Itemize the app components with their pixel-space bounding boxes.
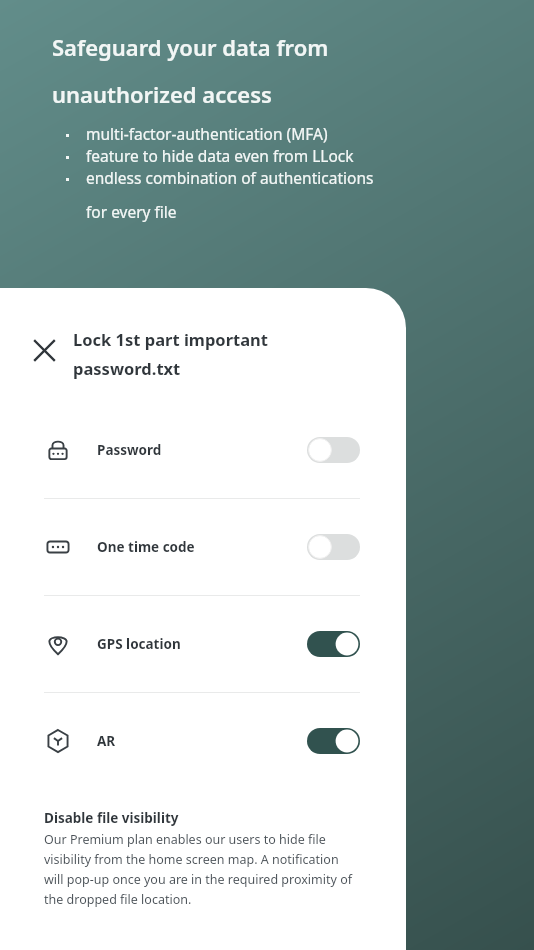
button[interactable]: Close xyxy=(24,330,64,370)
staticText: multi-factor-authentication (MFA) xyxy=(86,123,328,144)
staticText: One time code xyxy=(97,538,195,556)
staticText: endless combination of authentications f… xyxy=(86,167,374,223)
staticText: Our Premium plan enables our users to hi… xyxy=(44,831,360,908)
staticText: AR xyxy=(97,732,116,750)
button[interactable]: GPS location xyxy=(0,596,406,692)
staticText: Lock 1st part important password.txt xyxy=(73,328,268,380)
staticText: Disable file visibility xyxy=(44,809,179,827)
staticText: GPS location xyxy=(97,635,181,653)
staticText: Password xyxy=(97,441,162,459)
button[interactable]: One time code xyxy=(0,499,406,595)
button[interactable]: Password xyxy=(0,402,406,498)
staticText: Safeguard your data from unauthorized ac… xyxy=(52,32,329,109)
staticText: feature to hide data even from LLock xyxy=(86,145,354,166)
button[interactable]: AR xyxy=(0,693,406,789)
